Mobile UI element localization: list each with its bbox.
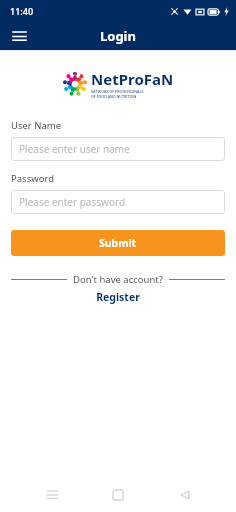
staticText: Please enter password	[19, 195, 126, 209]
staticText: Register	[96, 290, 140, 304]
staticText: NetProFaN	[91, 69, 174, 89]
button[interactable]: Recent apps	[37, 480, 67, 510]
staticText: Password	[11, 172, 54, 185]
button[interactable]: Register	[90, 289, 146, 305]
staticText: Please enter user name	[19, 142, 130, 156]
button[interactable]: Back	[170, 480, 200, 510]
button[interactable]: Submit	[11, 230, 225, 256]
staticText: Login	[100, 27, 136, 45]
button[interactable]: Please enter password	[11, 190, 225, 214]
staticText: 11:40	[10, 5, 34, 17]
button[interactable]: Home	[103, 480, 133, 510]
staticText: Submit	[99, 236, 137, 250]
button[interactable]: Open navigation menu	[8, 25, 30, 47]
staticText: User Name	[11, 119, 62, 132]
staticText: Don't have account?	[73, 273, 163, 286]
button[interactable]: Please enter user name	[11, 137, 225, 161]
staticText: OF FOOD AND NUTRITION	[91, 94, 137, 99]
staticText: NETWORK OF PROFESSIONALS	[91, 89, 144, 94]
